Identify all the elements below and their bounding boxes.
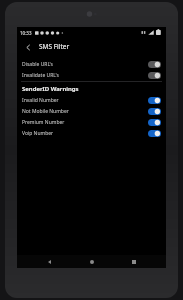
button[interactable]: Disable URL's (17, 59, 166, 70)
button[interactable]: Invalid Number (17, 95, 166, 106)
staticText: SMS Filter (39, 42, 70, 51)
staticText: Invalid Number (22, 97, 148, 104)
button[interactable]: Recent apps (124, 255, 144, 268)
staticText: Not Mobile Number (22, 108, 148, 115)
button[interactable]: Voip Number (17, 128, 166, 139)
staticText: Premium Number (22, 119, 148, 126)
button[interactable]: Not Mobile Number (17, 106, 166, 117)
button[interactable]: Home (82, 255, 102, 268)
staticText: Disable URL's (22, 61, 148, 68)
staticText: Invalidate URL's (22, 72, 148, 79)
button[interactable]: Premium Number (17, 117, 166, 128)
staticText: SenderID Warnings (22, 85, 79, 93)
staticText: Voip Number (22, 130, 148, 137)
staticText: 10:33 (20, 30, 32, 36)
button[interactable]: Invalidate URL's (17, 70, 166, 81)
button[interactable]: Back (21, 40, 35, 54)
button[interactable]: Back (39, 255, 59, 268)
